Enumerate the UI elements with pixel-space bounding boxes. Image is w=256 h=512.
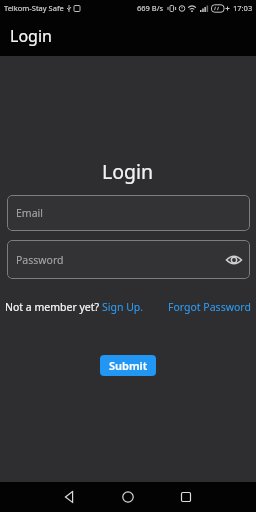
button[interactable] bbox=[42, 482, 98, 512]
staticText: Sign Up. bbox=[102, 300, 144, 314]
button[interactable] bbox=[158, 482, 214, 512]
staticText: Telkom-Stay Safe bbox=[4, 3, 64, 13]
button[interactable]: Sign Up. bbox=[102, 300, 144, 314]
button[interactable] bbox=[100, 482, 156, 512]
button[interactable]: Password bbox=[7, 240, 250, 279]
button[interactable]: Submit bbox=[100, 355, 156, 376]
staticText: 669 B/s bbox=[137, 3, 164, 13]
staticText: Email bbox=[16, 206, 43, 220]
button[interactable]: Email bbox=[7, 195, 250, 231]
staticText: Login bbox=[102, 158, 154, 185]
staticText: Login bbox=[10, 25, 52, 47]
staticText: Not a member yet? bbox=[5, 300, 102, 314]
staticText: Submit bbox=[109, 358, 148, 373]
staticText: Forgot Password bbox=[168, 300, 251, 314]
button[interactable]: Forgot Password bbox=[168, 300, 251, 314]
staticText: Password bbox=[16, 253, 64, 267]
staticText: 17:03 bbox=[233, 3, 253, 13]
